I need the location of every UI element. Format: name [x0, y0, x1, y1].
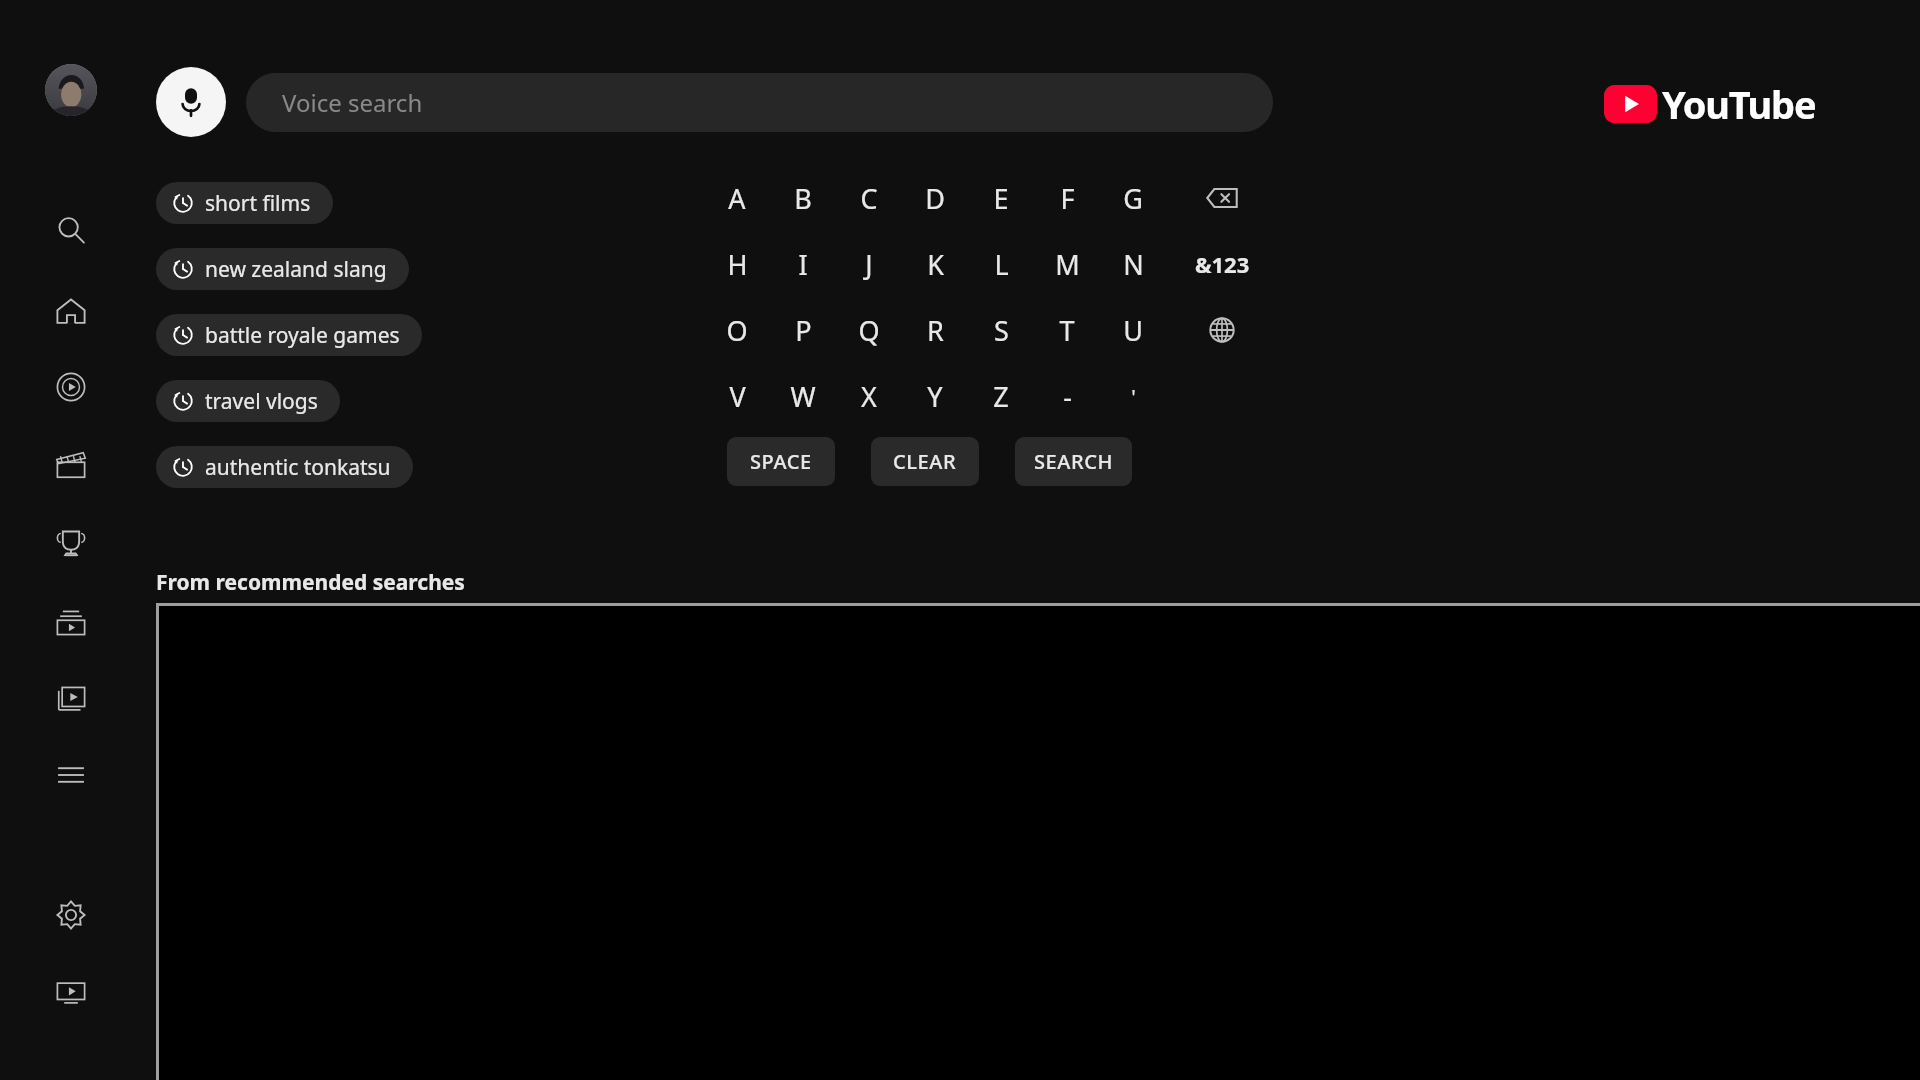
staticText: W	[790, 378, 816, 415]
staticText: Voice search	[282, 86, 423, 119]
staticText: E	[993, 180, 1009, 217]
button[interactable]: Your videos	[47, 968, 95, 1016]
button[interactable]: S	[974, 303, 1028, 357]
staticText: N	[1123, 246, 1144, 283]
staticText: T	[1059, 312, 1075, 349]
button[interactable]: Sports	[47, 519, 95, 567]
staticText: F	[1060, 180, 1075, 217]
button[interactable]: YouTube	[1604, 78, 1816, 130]
staticText: travel vlogs	[205, 387, 318, 416]
staticText: J	[865, 246, 873, 283]
staticText: battle royale games	[205, 321, 400, 350]
button[interactable]: D	[908, 171, 962, 225]
button[interactable]: O	[710, 303, 764, 357]
button[interactable]: -	[1040, 369, 1094, 423]
button[interactable]: A	[710, 171, 764, 225]
staticText: new zealand slang	[205, 255, 387, 284]
staticText: D	[925, 180, 945, 217]
staticText: B	[794, 180, 812, 217]
button[interactable]: Change language	[1195, 303, 1249, 357]
button[interactable]: Playlists	[47, 599, 95, 647]
staticText: SEARCH	[1034, 448, 1114, 475]
staticText: '	[1131, 383, 1136, 410]
button[interactable]: I	[776, 237, 830, 291]
button[interactable]: Menu	[47, 751, 95, 799]
staticText: V	[729, 378, 746, 415]
button[interactable]: SPACE	[727, 437, 835, 486]
button[interactable]: Search	[47, 206, 95, 254]
staticText: R	[927, 312, 944, 349]
button[interactable]: M	[1040, 237, 1094, 291]
staticText: O	[726, 312, 748, 349]
staticText: From recommended searches	[156, 568, 465, 597]
staticText: -	[1063, 378, 1072, 415]
staticText: YouTube	[1662, 78, 1816, 130]
button[interactable]: Home	[47, 287, 95, 335]
staticText: short films	[205, 189, 311, 218]
button[interactable]: W	[776, 369, 830, 423]
button[interactable]: X	[842, 369, 896, 423]
button[interactable]: V	[710, 369, 764, 423]
button[interactable]: P	[776, 303, 830, 357]
staticText: H	[727, 246, 748, 283]
staticText: &123	[1195, 249, 1250, 279]
staticText: X	[861, 378, 877, 415]
staticText: G	[1123, 180, 1143, 217]
button[interactable]: SEARCH	[1015, 437, 1132, 486]
button[interactable]: CLEAR	[871, 437, 979, 486]
button[interactable]: L	[974, 237, 1028, 291]
staticText: CLEAR	[893, 448, 957, 475]
staticText: L	[994, 246, 1009, 283]
staticText: Q	[858, 312, 880, 349]
staticText: M	[1055, 246, 1080, 283]
button[interactable]: C	[842, 171, 896, 225]
button[interactable]: F	[1040, 171, 1094, 225]
button[interactable]: authentic tonkatsu	[156, 446, 413, 488]
button[interactable]: new zealand slang	[156, 248, 409, 290]
button[interactable]: Backspace	[1195, 171, 1249, 225]
button[interactable]: B	[776, 171, 830, 225]
button[interactable]: K	[908, 237, 962, 291]
button[interactable]: N	[1106, 237, 1160, 291]
staticText: S	[994, 312, 1009, 349]
staticText: Z	[993, 378, 1009, 415]
staticText: K	[927, 246, 944, 283]
button[interactable]: short films	[156, 182, 333, 224]
button[interactable]: &123	[1182, 237, 1262, 291]
staticText: Y	[927, 378, 943, 415]
staticText: U	[1123, 312, 1143, 349]
button[interactable]: T	[1040, 303, 1094, 357]
button[interactable]: travel vlogs	[156, 380, 340, 422]
button[interactable]: Shorts	[47, 363, 95, 411]
staticText: P	[795, 312, 812, 349]
button[interactable]: H	[710, 237, 764, 291]
button[interactable]: Voice search	[246, 73, 1273, 132]
button[interactable]: J	[842, 237, 896, 291]
button[interactable]: Z	[974, 369, 1028, 423]
staticText: SPACE	[750, 448, 812, 475]
button[interactable]: G	[1106, 171, 1160, 225]
staticText: I	[798, 246, 808, 283]
button[interactable]: '	[1106, 369, 1160, 423]
button[interactable]: E	[974, 171, 1028, 225]
button[interactable]: Settings	[47, 891, 95, 939]
button[interactable]: Y	[908, 369, 962, 423]
staticText: authentic tonkatsu	[205, 453, 391, 482]
button[interactable]: Library	[47, 675, 95, 723]
button[interactable]: R	[908, 303, 962, 357]
button[interactable]: Movies	[47, 441, 95, 489]
button[interactable]: battle royale games	[156, 314, 422, 356]
button[interactable]: Q	[842, 303, 896, 357]
button[interactable]: U	[1106, 303, 1160, 357]
staticText: A	[728, 180, 746, 217]
button[interactable]: Account	[45, 64, 97, 116]
button[interactable]: Voice search	[156, 67, 226, 137]
staticText: C	[860, 180, 878, 217]
